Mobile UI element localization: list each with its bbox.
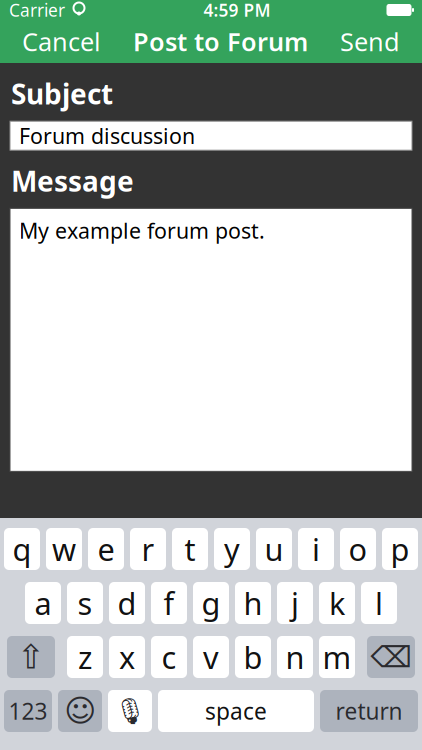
staticText: Message [11,162,134,199]
button[interactable]: p [382,528,418,570]
staticText: Post to Forum [133,25,308,58]
staticText: f [163,583,174,623]
staticText: x [119,637,135,677]
button[interactable]: b [235,636,271,678]
staticText: y [224,529,240,569]
staticText: 4:59 PM [203,0,270,21]
button[interactable]: d [109,582,145,624]
staticText: w [52,529,76,569]
staticText: return [335,696,402,726]
staticText: r [141,529,154,569]
button[interactable]: Cancel [12,17,111,66]
staticText: l [375,583,383,623]
button[interactable]: y [214,528,250,570]
button[interactable]: space [158,690,314,732]
button[interactable]: k [319,582,355,624]
button[interactable]: n [277,636,313,678]
button[interactable]: t [172,528,208,570]
staticText: i [312,529,320,569]
staticText: space [205,696,267,726]
button[interactable]: Delete [367,636,415,678]
staticText: Forum discussion [19,121,195,150]
staticText: o [348,529,367,569]
staticText: ☺ [64,694,96,728]
staticText: My example forum post. [19,216,265,245]
staticText: Subject [11,75,113,112]
button[interactable]: u [256,528,292,570]
staticText: s [77,583,92,623]
staticText: v [203,637,219,677]
button[interactable]: return [320,690,418,732]
button[interactable]: w [46,528,82,570]
button[interactable]: c [151,636,187,678]
button[interactable]: x [109,636,145,678]
staticText: ⌫ [370,640,411,674]
button[interactable]: e [88,528,124,570]
staticText: p [390,529,409,569]
staticText: Cancel [22,25,101,58]
staticText: e [97,529,114,569]
staticText: g [201,583,220,623]
staticText: Carrier [9,0,65,21]
button[interactable]: l [361,582,397,624]
button[interactable]: Send [330,17,410,66]
button[interactable]: v [193,636,229,678]
button[interactable]: i [298,528,334,570]
button[interactable]: 123 [4,690,52,732]
button[interactable]: s [67,582,103,624]
button[interactable]: q [4,528,40,570]
staticText: q [12,529,31,569]
staticText: c [161,637,176,677]
staticText: j [291,583,299,623]
staticText: d [117,583,136,623]
staticText: Send [340,25,400,58]
staticText: n [285,637,304,677]
staticText: b [243,637,262,677]
button[interactable]: g [193,582,229,624]
button[interactable]: a [25,582,61,624]
staticText: t [184,529,195,569]
button[interactable]: m [319,636,355,678]
button[interactable]: h [235,582,271,624]
staticText: ⇧ [17,638,45,676]
button[interactable]: Dictation [108,690,152,732]
button[interactable]: Shift [7,636,55,678]
staticText: m [322,637,351,677]
staticText: u [264,529,283,569]
button[interactable]: Emoji [58,690,102,732]
staticText: a [34,583,51,623]
button[interactable]: z [67,636,103,678]
button[interactable]: j [277,582,313,624]
button[interactable]: o [340,528,376,570]
button[interactable]: r [130,528,166,570]
staticText: k [329,583,345,623]
staticText: z [78,637,92,677]
staticText: 123 [8,696,47,726]
button[interactable]: f [151,582,187,624]
staticText: 🎙 [114,696,146,725]
staticText: h [243,583,262,623]
